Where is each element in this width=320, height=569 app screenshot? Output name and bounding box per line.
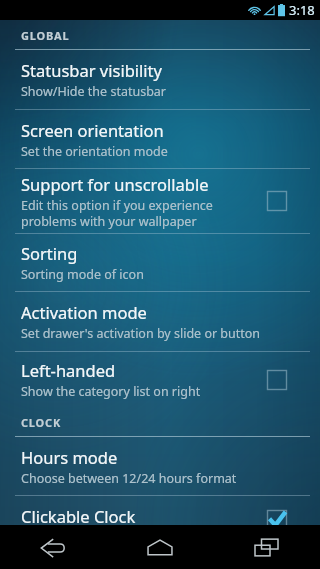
staticText: Show/Hide the statusbar — [21, 83, 166, 100]
button[interactable]: Sorting — [0, 234, 320, 291]
staticText: Clickable Clock — [21, 505, 136, 525]
staticText: GLOBAL — [21, 28, 70, 43]
staticText: Screen orientation — [21, 119, 164, 141]
staticText: Sorting — [21, 242, 78, 264]
button[interactable]: Activation mode — [0, 292, 320, 351]
staticText: CLOCK — [21, 415, 62, 430]
button[interactable]: Left-handed — [0, 352, 320, 407]
staticText: Support for unscrollable wallp.. — [21, 173, 252, 195]
button[interactable]: Statusbar visibility — [0, 50, 320, 109]
staticText: Set drawer's activation by slide or butt… — [21, 325, 261, 342]
button[interactable]: Support for unscrollable wallp.. — [0, 169, 320, 233]
button[interactable]: Hours mode — [0, 437, 320, 495]
staticText: Sorting mode of icon — [21, 266, 144, 283]
staticText: Show the category list on right — [21, 383, 201, 400]
staticText: Hours mode — [21, 446, 118, 468]
button[interactable]: Screen orientation — [0, 110, 320, 168]
button[interactable]: Back — [0, 525, 106, 569]
staticText: Choose between 12/24 hours format — [21, 470, 237, 487]
staticText: Left-handed — [21, 359, 116, 381]
staticText: Edit this option if you experience probl… — [21, 197, 213, 229]
staticText: 3:18 — [289, 1, 315, 19]
button[interactable]: Clickable Clock — [0, 496, 320, 525]
staticText: Statusbar visibility — [21, 59, 162, 81]
button[interactable]: Recent apps — [213, 525, 320, 569]
staticText: Activation mode — [21, 301, 147, 323]
staticText: Set the orientation mode — [21, 143, 168, 160]
button[interactable]: Home — [106, 525, 213, 569]
